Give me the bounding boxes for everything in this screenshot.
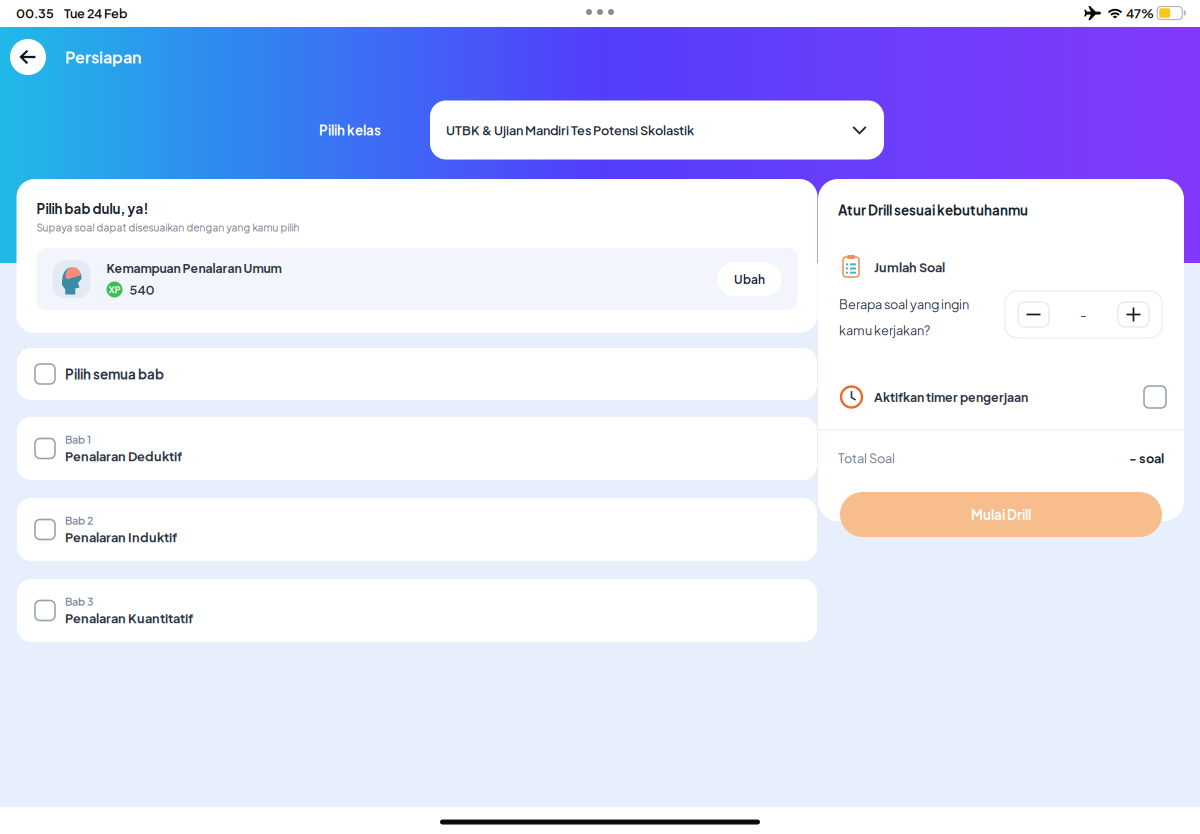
staticText: Jumlah Soal xyxy=(874,259,945,275)
staticText: Pilih bab dulu, ya! xyxy=(36,200,148,217)
staticText: Aktifkan timer pengerjaan xyxy=(874,389,1028,405)
button[interactable]: Mulai Drill xyxy=(840,492,1162,537)
staticText: 540 xyxy=(129,281,154,297)
staticText: Bab 3 xyxy=(65,595,94,608)
staticText: Persiapan xyxy=(65,47,141,67)
staticText: Ubah xyxy=(734,271,765,286)
button[interactable]: Bab 1 xyxy=(17,417,817,480)
staticText: kamu kerjakan? xyxy=(839,322,930,338)
staticText: 47% xyxy=(1126,5,1154,21)
staticText: Kemampuan Penalaran Umum xyxy=(106,260,281,276)
staticText: - soal xyxy=(1129,450,1164,466)
staticText: Bab 2 xyxy=(65,514,93,527)
staticText: Penalaran Induktif xyxy=(65,529,177,545)
staticText: Atur Drill sesuai kebutuhanmu xyxy=(838,202,1028,218)
button[interactable]: Tambah soal xyxy=(1118,302,1149,327)
staticText: XP xyxy=(108,284,120,295)
button[interactable]: Ubah xyxy=(717,262,781,296)
button[interactable]: Kembali xyxy=(10,39,46,75)
staticText: UTBK & Ujian Mandiri Tes Potensi Skolast… xyxy=(446,122,694,138)
button[interactable]: UTBK & Ujian Mandiri Tes Potensi Skolast… xyxy=(430,100,884,159)
button[interactable]: Kurangi soal xyxy=(1018,302,1049,327)
staticText: Bab 1 xyxy=(65,433,91,446)
staticText: Penalaran Kuantitatif xyxy=(65,610,193,626)
staticText: Pilih semua bab xyxy=(65,366,164,382)
button[interactable]: Bab 2 xyxy=(17,498,817,561)
staticText: Berapa soal yang ingin xyxy=(839,296,969,312)
staticText: Total Soal xyxy=(838,450,895,466)
button[interactable]: Pilih semua bab xyxy=(17,348,817,400)
staticText: Pilih kelas xyxy=(319,122,381,138)
staticText: Supaya soal dapat disesuaikan dengan yan… xyxy=(36,221,299,234)
staticText: Tue 24 Feb xyxy=(64,5,127,21)
button[interactable]: Bab 3 xyxy=(17,579,817,642)
staticText: Mulai Drill xyxy=(971,506,1031,523)
staticText: 00.35 xyxy=(16,5,54,21)
staticText: Penalaran Deduktif xyxy=(65,448,182,464)
staticText: - xyxy=(1080,306,1087,323)
